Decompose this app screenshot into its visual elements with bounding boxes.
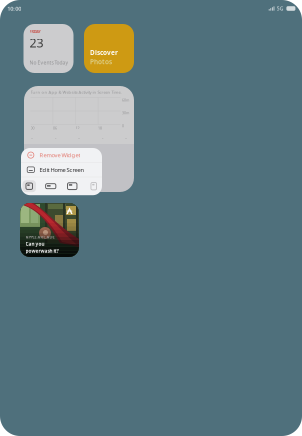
staticText: 30m (122, 110, 129, 115)
staticText: Photos (90, 57, 112, 66)
staticText: FRIDAY (29, 29, 40, 34)
staticText: 18 (98, 125, 102, 130)
button[interactable]: Remove Widget (21, 148, 102, 162)
staticText: – (78, 134, 80, 140)
button[interactable]: APPLE ARCADE (20, 203, 79, 257)
staticText: 0 (122, 123, 124, 128)
staticText: No Events Today (29, 59, 68, 66)
staticText: 06 (53, 125, 57, 130)
staticText: 23 (29, 34, 43, 51)
staticText: 5G (277, 5, 284, 12)
staticText: Can you (25, 241, 44, 247)
staticText: 12 (75, 125, 79, 130)
button[interactable]: Large widget size (65, 180, 79, 192)
button[interactable]: Extra large widget size (87, 180, 100, 192)
button[interactable]: Discover (84, 24, 134, 73)
staticText: 60m (122, 97, 129, 102)
staticText: – (54, 134, 56, 140)
staticText: Remove Widget (39, 151, 80, 159)
button[interactable]: Medium widget size (44, 180, 57, 192)
staticText: Discover (90, 48, 118, 57)
staticText: Turn on App & Website Activity in Screen… (30, 89, 121, 95)
button[interactable]: Small widget size (22, 180, 36, 192)
button[interactable]: FRIDAY (23, 24, 73, 73)
staticText: – (31, 134, 33, 140)
staticText: Edit Home Screen (39, 166, 84, 174)
staticText: – (125, 134, 127, 140)
staticText: powerwash it? (25, 248, 58, 254)
staticText: 00 (30, 125, 34, 130)
staticText: 10:00 (7, 5, 21, 12)
staticText: APPLE ARCADE (25, 234, 54, 240)
staticText: – (101, 134, 103, 140)
button[interactable]: Edit Home Screen (21, 163, 102, 177)
